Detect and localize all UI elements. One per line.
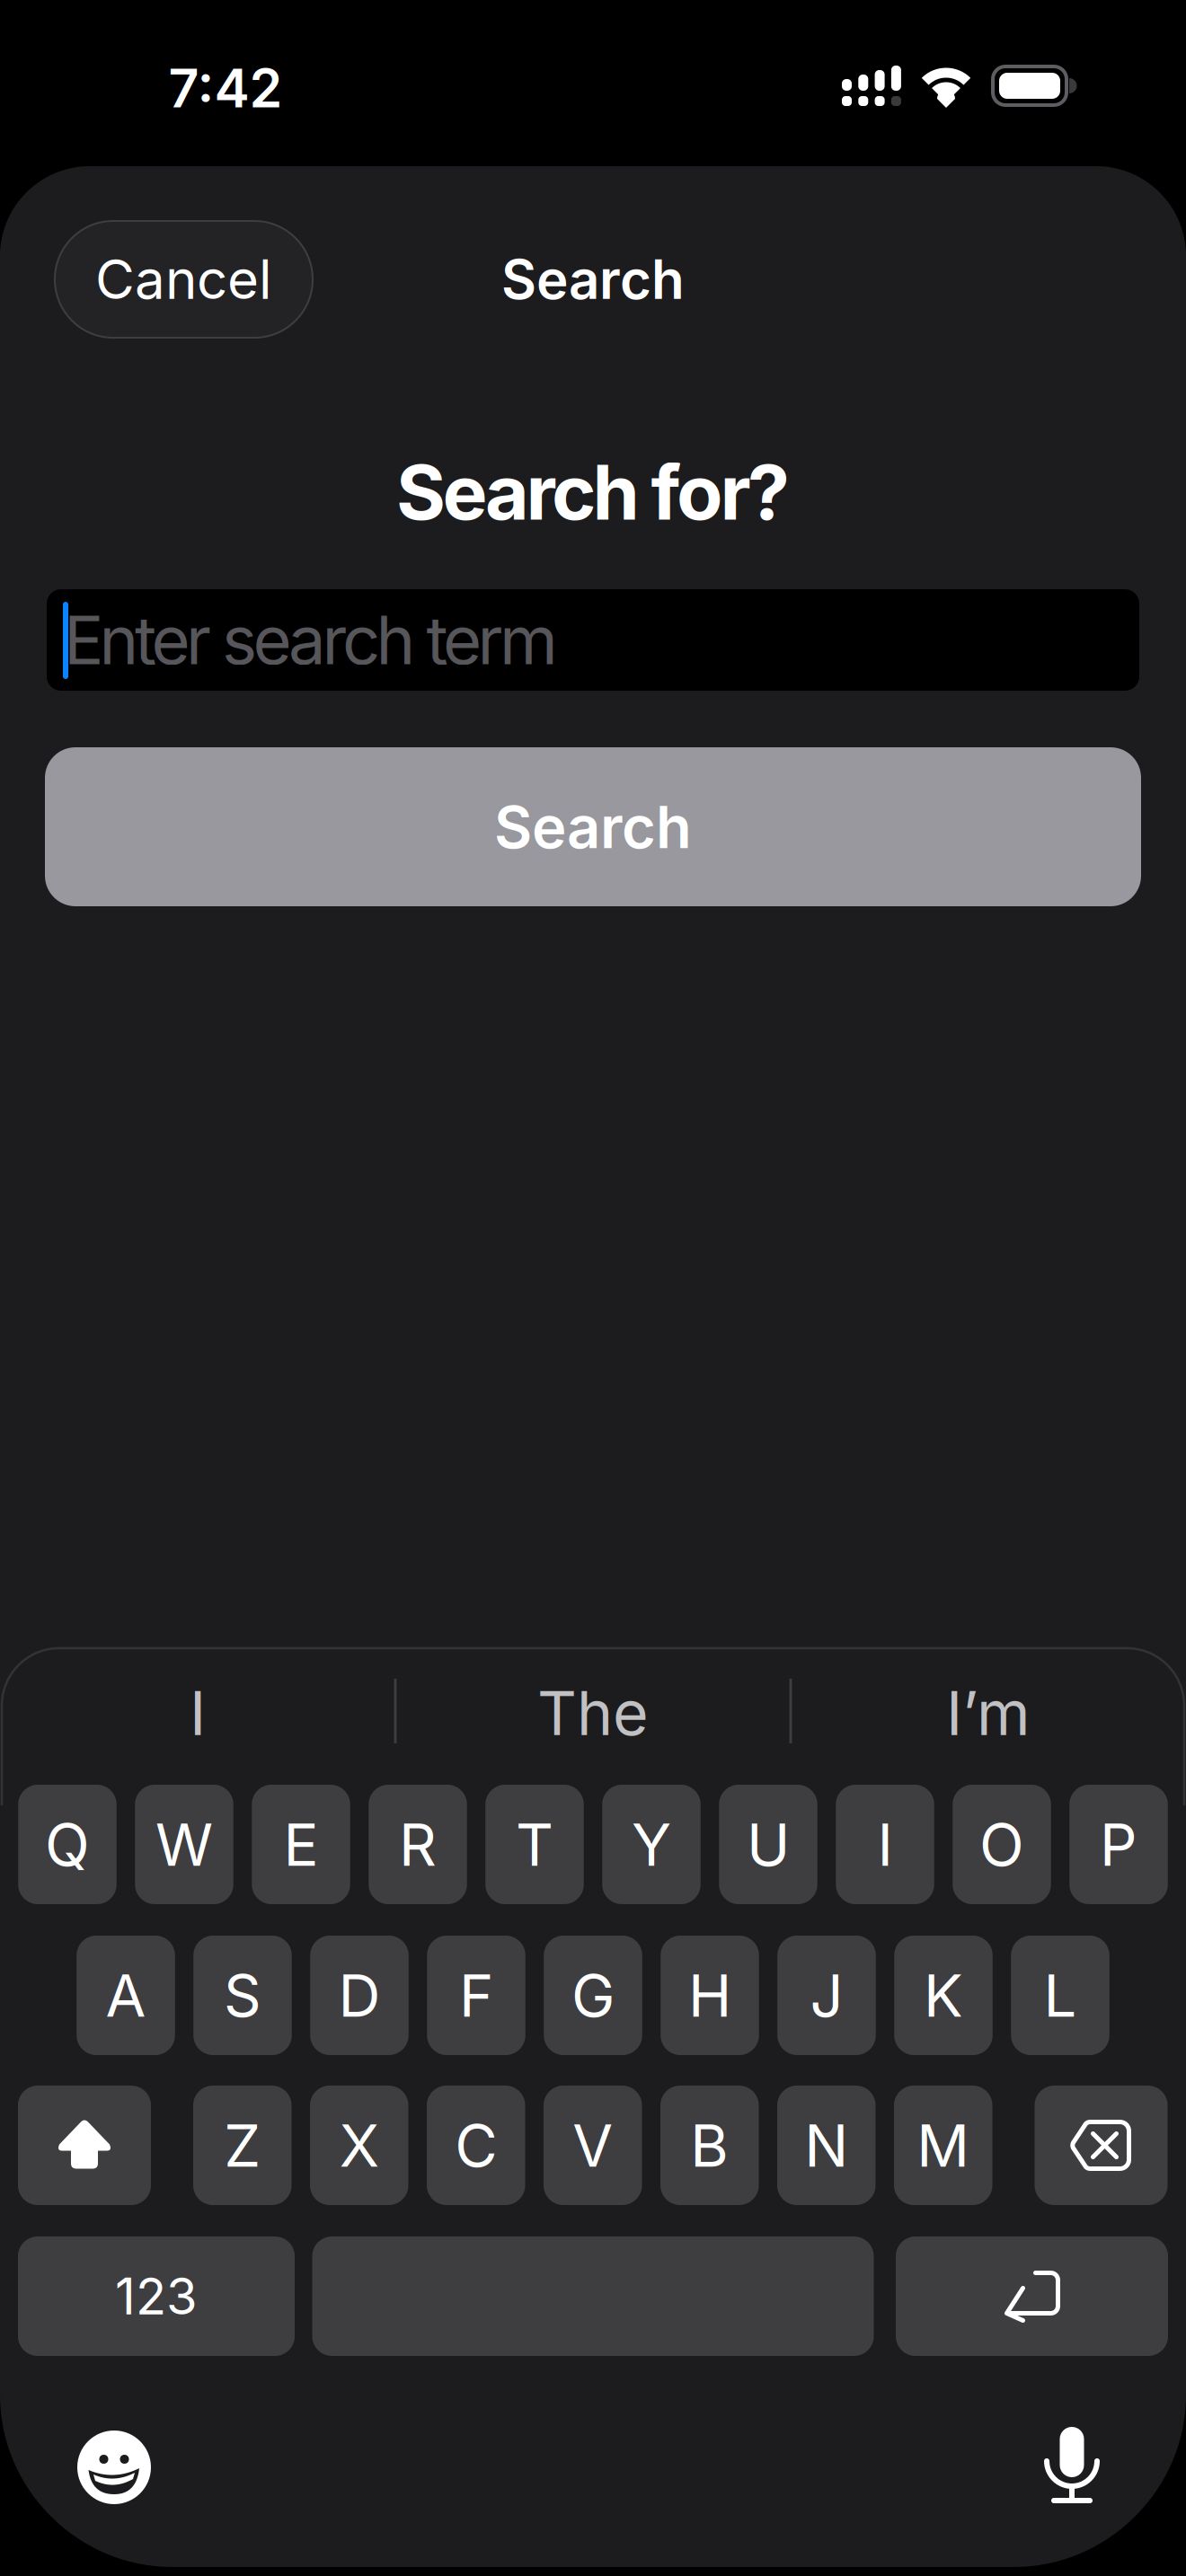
staticText: A [106,1961,146,2030]
button[interactable] [1035,2086,1168,2205]
staticText: 7:42 [168,57,283,119]
staticText: R [399,1810,437,1879]
staticText: 123 [115,2267,198,2326]
button[interactable]: I [836,1785,934,1904]
staticText: O [979,1810,1024,1879]
button[interactable]: T [485,1785,584,1904]
button[interactable]: H [661,1936,759,2055]
button[interactable] [312,2236,874,2356]
button[interactable]: A [77,1936,175,2055]
staticText: G [571,1961,615,2030]
staticText: Search for? [396,448,790,537]
button[interactable]: U [719,1785,817,1904]
button[interactable]: Z [193,2086,292,2205]
staticText: U [747,1810,790,1879]
button[interactable]: Cancel [55,221,313,338]
staticText: M [917,2111,970,2180]
button[interactable]: N [777,2086,876,2205]
button[interactable]: C [427,2086,525,2205]
staticText: T [516,1810,553,1879]
button[interactable]: Y [602,1785,701,1904]
button[interactable]: B [660,2086,759,2205]
button[interactable] [1031,2425,1112,2510]
staticText: V [573,2111,613,2180]
staticText: X [339,2111,379,2180]
staticText: J [810,1961,843,2030]
button[interactable]: R [369,1785,467,1904]
button[interactable] [18,2086,151,2205]
button[interactable]: G [544,1936,642,2055]
staticText: Search [501,248,685,311]
button[interactable]: V [544,2086,642,2205]
staticText: B [690,2111,729,2180]
staticText: Y [632,1810,671,1879]
button[interactable]: Search [45,747,1141,906]
staticText: I [190,1677,206,1749]
staticText: D [338,1961,381,2030]
button[interactable]: J [777,1936,876,2055]
staticText: I [877,1810,893,1879]
button[interactable] [74,2427,155,2508]
button[interactable]: W [135,1785,233,1904]
button[interactable]: X [310,2086,408,2205]
button[interactable]: 123 [18,2236,295,2356]
button[interactable] [896,2236,1168,2356]
staticText: Cancel [95,248,272,311]
button[interactable]: M [894,2086,992,2205]
staticText: Enter search term [64,601,558,679]
button[interactable]: O [953,1785,1051,1904]
button[interactable]: S [193,1936,292,2055]
staticText: H [688,1961,731,2030]
staticText: C [455,2111,497,2180]
staticText: S [224,1961,261,2030]
staticText: F [459,1961,493,2030]
staticText: I’m [946,1677,1031,1749]
staticText: Z [224,2111,261,2180]
button[interactable]: Q [18,1785,117,1904]
staticText: P [1100,1810,1137,1879]
button[interactable]: F [427,1936,525,2055]
staticText: K [924,1961,963,2030]
staticText: Q [45,1810,90,1879]
staticText: L [1044,1961,1077,2030]
button[interactable]: I [18,1663,377,1762]
button[interactable]: The [413,1663,773,1762]
staticText: E [283,1810,319,1879]
button[interactable]: D [310,1936,409,2055]
button[interactable]: P [1069,1785,1168,1904]
staticText: The [537,1677,649,1749]
staticText: N [804,2111,848,2180]
button[interactable]: L [1011,1936,1109,2055]
staticText: Search [494,792,692,861]
button[interactable]: K [894,1936,993,2055]
button[interactable]: I’m [809,1663,1168,1762]
staticText: W [155,1810,213,1879]
button[interactable]: E [252,1785,350,1904]
button[interactable]: Enter search term [47,589,1139,691]
